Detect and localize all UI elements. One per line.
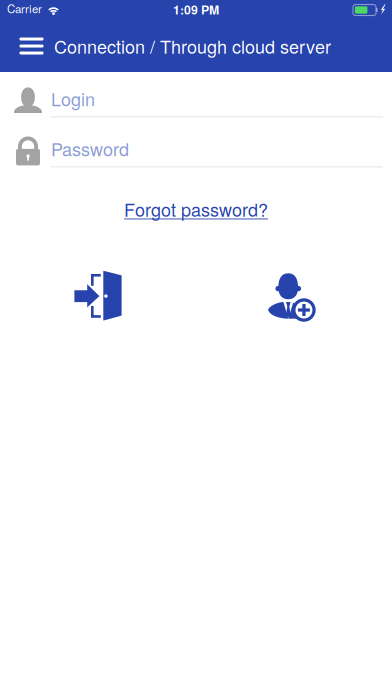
staticText: Forgot password? bbox=[124, 196, 268, 222]
staticText: Connection / Through cloud server bbox=[54, 33, 331, 59]
staticText: Login bbox=[51, 86, 95, 111]
staticText: Carrier bbox=[7, 0, 42, 16]
staticText: Password bbox=[51, 136, 129, 161]
button[interactable]: Register new account bbox=[256, 265, 328, 327]
button[interactable]: Sign in bbox=[62, 265, 134, 327]
staticText: 1:09 PM bbox=[173, 1, 219, 18]
button[interactable]: Menu bbox=[9, 22, 54, 70]
button[interactable]: Forgot password? bbox=[118, 193, 274, 225]
